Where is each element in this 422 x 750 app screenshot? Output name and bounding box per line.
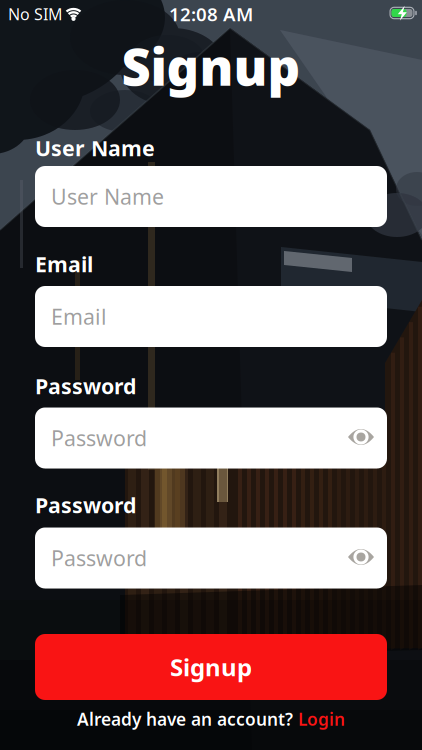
button[interactable]: Signup [35, 634, 387, 700]
button[interactable]: User Name [35, 166, 387, 227]
staticText: No SIM [8, 3, 63, 25]
button[interactable]: Login [298, 707, 345, 730]
button[interactable]: Email [35, 286, 387, 347]
button[interactable] [347, 547, 375, 566]
staticText: Login [298, 707, 345, 730]
staticText: Signup [170, 651, 252, 683]
staticText: Password [35, 372, 136, 400]
staticText: Already have an account? [77, 707, 293, 730]
button[interactable]: Password [35, 527, 387, 588]
staticText: User Name [35, 134, 155, 162]
staticText: Password [35, 491, 136, 519]
staticText: Email [51, 302, 107, 331]
button[interactable] [347, 427, 375, 446]
staticText: Signup [121, 32, 300, 100]
button[interactable]: Password [35, 407, 387, 468]
staticText: User Name [51, 182, 164, 211]
staticText: Password [51, 544, 147, 572]
staticText: Password [51, 424, 147, 452]
staticText: 12:08 AM [169, 2, 253, 26]
staticText: Email [35, 250, 93, 278]
